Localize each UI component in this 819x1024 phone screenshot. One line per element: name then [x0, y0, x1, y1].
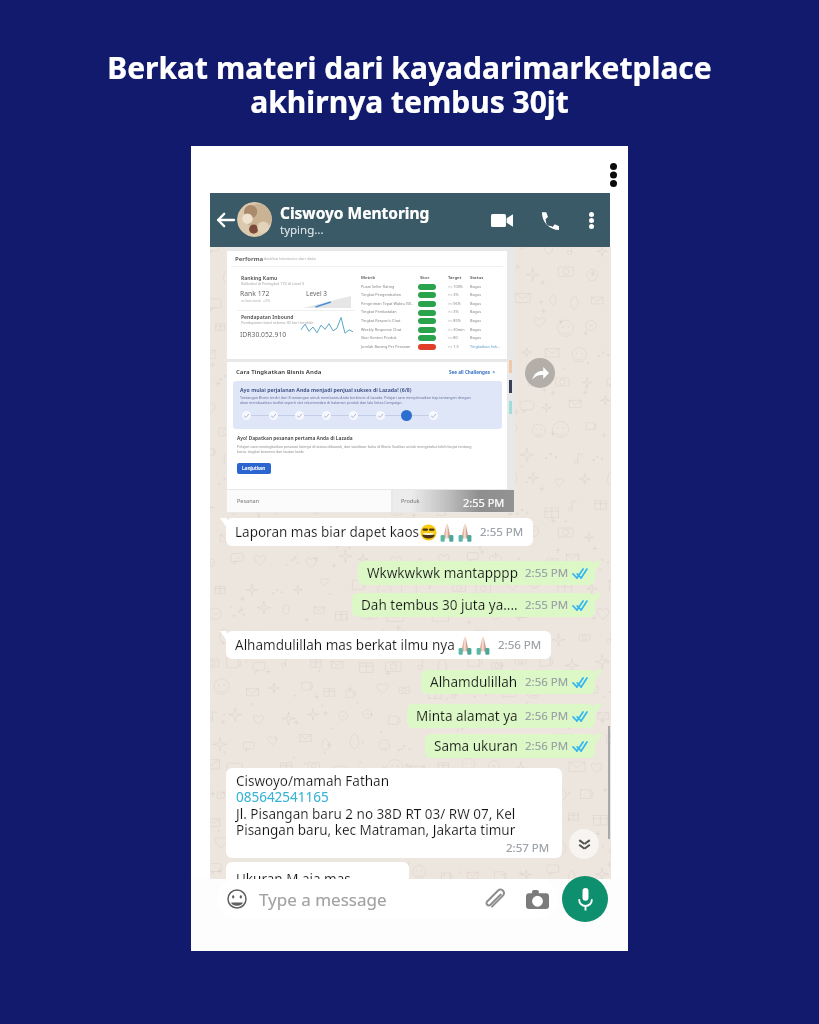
staticText: Bagus: [470, 335, 482, 340]
staticText: Tingkatkan Sek...: [470, 344, 501, 349]
staticText: Bagus: [470, 309, 482, 314]
staticText: Level 3: [306, 289, 327, 298]
staticText: Bagus: [470, 318, 482, 323]
staticText: Skor Konten Produk: [361, 335, 397, 340]
staticText: Pisangan baru, kec Matraman, Jakarta tim…: [236, 821, 516, 839]
button[interactable]: Voice call: [534, 205, 564, 235]
staticText: >= 85%: [448, 318, 461, 323]
staticText: Alhamdulillah mas berkat ilmu nya: [235, 636, 455, 654]
staticText: >= 3%: [448, 309, 459, 314]
staticText: >= 100%: [448, 284, 464, 289]
button[interactable]: Dah tembus 30 juta ya....: [352, 593, 595, 617]
staticText: Ukuran M aja mas: [236, 870, 351, 879]
staticText: Tantangan Bisnis terdiri dari 8 tantanga…: [240, 395, 471, 405]
staticText: Tingkat Pembatalan: [361, 309, 397, 314]
staticText: Wkwkwkwk mantapppp: [367, 564, 518, 582]
button[interactable]: [237, 202, 272, 237]
staticText: Produk: [401, 497, 420, 504]
staticText: Target: [448, 275, 462, 281]
staticText: Dah tembus 30 juta ya....: [361, 596, 518, 614]
staticText: Cara Tingkatkan Bisnis Anda: [236, 368, 322, 376]
staticText: Bagus: [470, 327, 482, 332]
staticText: Rank 172: [240, 289, 270, 298]
staticText: >= 1.5: [448, 344, 459, 349]
staticText: 2:55 PM: [525, 597, 569, 613]
staticText: Ciswoyo/mamah Fathan: [236, 772, 390, 790]
staticText: >= 96%: [448, 301, 461, 306]
staticText: Pusat Seller Rating: [361, 284, 395, 289]
button[interactable]: Emoji: [217, 879, 558, 918]
staticText: 2:55 PM: [525, 565, 569, 581]
button[interactable]: Sama ukuran: [425, 734, 595, 758]
staticText: IDR30.052.910: [240, 330, 287, 339]
staticText: Tingkat Respon's Chat: [361, 318, 401, 323]
button[interactable]: Ukuran M aja mas: [226, 862, 409, 879]
staticText: >= 3%: [448, 292, 459, 297]
staticText: Sama ukuran: [434, 737, 518, 755]
staticText: >= 30min: [448, 327, 465, 332]
button[interactable]: Camera: [523, 885, 551, 913]
staticText: Metrik: [361, 275, 375, 281]
staticText: Laporan mas biar dapet kaos: [235, 523, 420, 541]
button[interactable]: Scroll to bottom: [569, 829, 599, 859]
button[interactable]: Alhamdulillah: [421, 670, 595, 694]
staticText: Bagus: [470, 284, 482, 289]
staticText: Analisa bisnismu dari data: [264, 256, 316, 262]
staticText: 2:57 PM: [506, 840, 550, 856]
button[interactable]: Laporan mas biar dapet kaos: [226, 518, 533, 546]
staticText: Skor: [420, 275, 430, 281]
button[interactable]: Minta alamat ya: [407, 704, 595, 728]
button[interactable]: Emoji: [227, 889, 247, 909]
staticText: Minta alamat ya: [416, 707, 518, 725]
staticText: Pelajari cara meningkatkan pesanan lainn…: [237, 444, 472, 454]
button[interactable]: More options: [605, 160, 621, 190]
staticText: Alhamdulillah: [430, 673, 518, 691]
button[interactable]: Wkwkwkwk mantapppp: [358, 561, 595, 585]
button[interactable]: Attach file: [480, 885, 508, 913]
staticText: Jumlah Barang Per Pesanan: [361, 344, 411, 349]
staticText: 2:55 PM: [480, 524, 524, 540]
staticText: Ayo! Dapatkan pesanan pertama Anda di La…: [237, 435, 353, 442]
staticText: 2:56 PM: [525, 674, 569, 690]
staticText: Bagus: [470, 301, 482, 306]
staticText: typing...: [280, 222, 324, 238]
button[interactable]: Lanjutkan: [237, 463, 271, 474]
button[interactable]: More options: [580, 205, 602, 235]
button[interactable]: Record voice message: [562, 876, 608, 922]
staticText: Pengiriman Tepat Waktu (50..: [361, 301, 414, 306]
button[interactable]: Ciswoyo/mamah Fathan: [226, 768, 562, 858]
staticText: Jl. Pisangan baru 2 no 38D RT 03/ RW 07,…: [236, 805, 516, 823]
staticText: Berkat materi dari kayadarimarketplace a…: [107, 47, 712, 121]
button[interactable]: Video call: [485, 206, 519, 234]
staticText: 2:56 PM: [525, 708, 569, 724]
staticText: Pendapatan Inbound: [241, 314, 294, 321]
staticText: 085642541165: [236, 788, 329, 806]
staticText: vs last week +3%: [241, 298, 271, 303]
staticText: >= 80: [448, 335, 458, 340]
staticText: Kalkulasi di Peringkat 172 di Level 3: [241, 281, 305, 286]
staticText: Performa: [235, 255, 264, 263]
button[interactable]: Performa: [226, 247, 515, 513]
staticText: Ayo mulai perjalanan Anda menjadi penjua…: [240, 386, 412, 393]
staticText: 2:55 PM: [463, 495, 505, 510]
button[interactable]: Forward message: [525, 358, 555, 388]
staticText: Type a message: [259, 888, 387, 911]
staticText: Ranking Kamu: [241, 275, 278, 282]
staticText: Pendapatan total selama 30 hari terakhir: [241, 320, 314, 325]
button[interactable]: Back: [215, 208, 236, 232]
staticText: See all Challenges >: [449, 369, 496, 375]
button[interactable]: Alhamdulillah mas berkat ilmu nya: [226, 631, 551, 659]
staticText: Lanjutkan: [242, 465, 266, 472]
staticText: Bagus: [470, 292, 482, 297]
staticText: 2:56 PM: [498, 637, 542, 653]
staticText: Weekly Response Chat: [361, 327, 402, 332]
staticText: Status: [470, 275, 484, 281]
staticText: Ciswoyo Mentoring: [280, 202, 430, 223]
staticText: Tingkat Pengembalian: [361, 292, 401, 297]
staticText: Pesanan: [237, 497, 260, 504]
staticText: 2:56 PM: [525, 738, 569, 754]
